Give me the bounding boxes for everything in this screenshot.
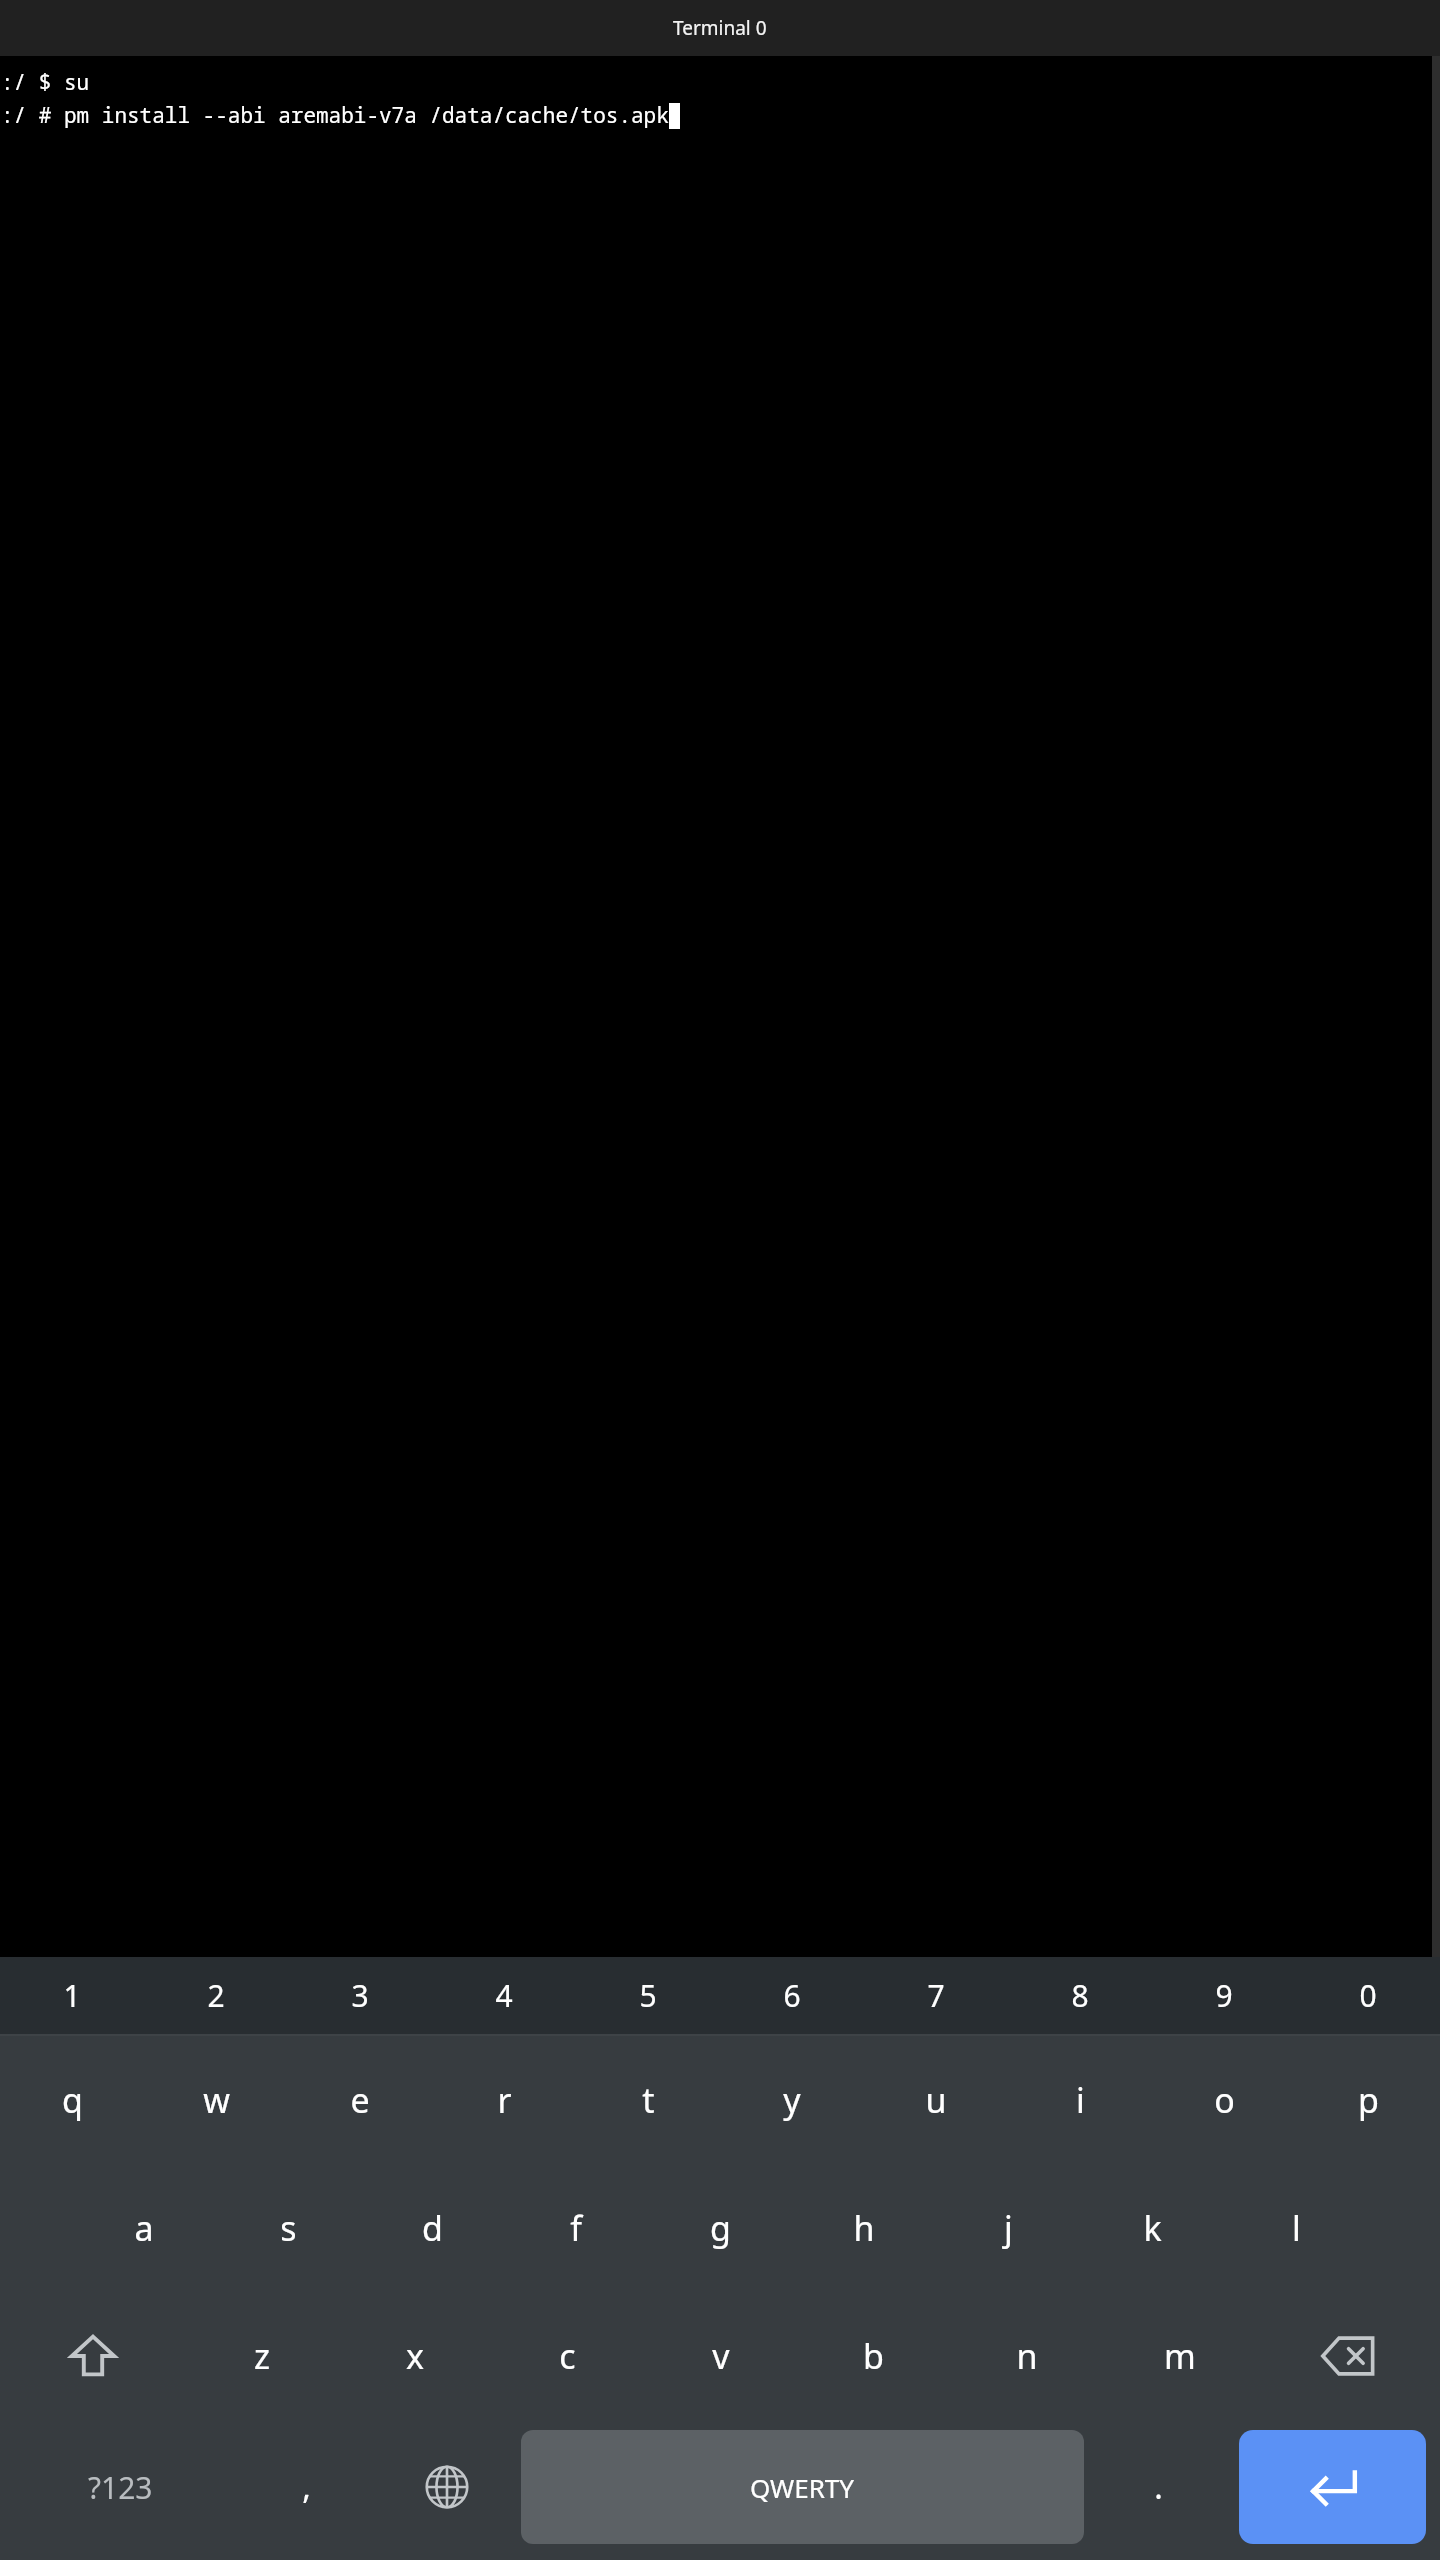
staticText: 3 (351, 1975, 369, 2016)
button[interactable]: 9 (1152, 1957, 1296, 2034)
staticText: h (853, 2205, 875, 2251)
button[interactable]: 8 (1008, 1957, 1152, 2034)
staticText: :/ # pm install --abi aremabi-v7a /data/… (1, 101, 669, 130)
staticText: 6 (783, 1975, 801, 2016)
staticText: 9 (1215, 1975, 1233, 2016)
staticText: z (254, 2333, 270, 2379)
button[interactable]: i (1008, 2036, 1152, 2164)
button[interactable]: x (338, 2292, 491, 2420)
staticText: d (422, 2205, 443, 2251)
button[interactable]: u (864, 2036, 1008, 2164)
staticText: . (1154, 2465, 1163, 2509)
button[interactable]: o (1152, 2036, 1296, 2164)
button[interactable]: l (1224, 2164, 1368, 2292)
staticText: m (1164, 2333, 1196, 2379)
button[interactable]: 2 (144, 1957, 288, 2034)
staticText: c (559, 2333, 576, 2379)
staticText: 4 (495, 1975, 513, 2016)
staticText: :/ $ su (1, 68, 90, 97)
staticText: v (712, 2333, 730, 2379)
button[interactable]: , (240, 2420, 372, 2554)
button[interactable]: e (288, 2036, 432, 2164)
staticText: u (925, 2077, 947, 2123)
staticText: 8 (1071, 1975, 1089, 2016)
button[interactable]: w (144, 2036, 288, 2164)
staticText: i (1076, 2077, 1085, 2123)
button[interactable]: t (576, 2036, 720, 2164)
staticText: 2 (207, 1975, 225, 2016)
button[interactable]: 3 (288, 1957, 432, 2034)
button[interactable]: r (432, 2036, 576, 2164)
staticText: t (642, 2077, 655, 2123)
staticText: j (1004, 2205, 1013, 2251)
button[interactable]: q (0, 2036, 144, 2164)
button[interactable]: ?123 (0, 2420, 240, 2554)
button[interactable]: f (504, 2164, 648, 2292)
button[interactable]: 6 (720, 1957, 864, 2034)
button[interactable]: h (792, 2164, 936, 2292)
button[interactable]: Backspace (1256, 2292, 1440, 2420)
staticText: 7 (927, 1975, 945, 2016)
button[interactable]: 4 (432, 1957, 576, 2034)
staticText: f (570, 2205, 582, 2251)
staticText: Terminal 0 (673, 15, 767, 41)
button[interactable]: m (1103, 2292, 1256, 2420)
staticText: w (203, 2077, 230, 2123)
button[interactable]: v (644, 2292, 797, 2420)
staticText: ?123 (88, 2467, 153, 2508)
button[interactable]: QWERTY (521, 2430, 1084, 2544)
staticText: b (863, 2333, 884, 2379)
staticText: QWERTY (750, 2470, 855, 2505)
button[interactable]: c (491, 2292, 644, 2420)
button[interactable]: Change language (372, 2420, 521, 2554)
staticText: n (1016, 2333, 1038, 2379)
button[interactable]: g (648, 2164, 792, 2292)
staticText: y (783, 2077, 801, 2123)
button[interactable]: 5 (576, 1957, 720, 2034)
button[interactable]: Shift (0, 2292, 185, 2420)
button[interactable]: k (1080, 2164, 1224, 2292)
staticText: l (1292, 2205, 1301, 2251)
staticText: r (497, 2077, 512, 2123)
staticText: s (280, 2205, 297, 2251)
staticText: , (302, 2465, 311, 2509)
button[interactable]: j (936, 2164, 1080, 2292)
staticText: 5 (639, 1975, 657, 2016)
button[interactable]: b (797, 2292, 950, 2420)
button[interactable]: z (185, 2292, 338, 2420)
staticText: k (1143, 2205, 1162, 2251)
staticText: 0 (1359, 1975, 1377, 2016)
staticText: p (1358, 2077, 1379, 2123)
staticText: g (710, 2205, 731, 2251)
staticText: x (406, 2333, 424, 2379)
staticText: q (62, 2077, 83, 2123)
button[interactable]: 1 (0, 1957, 144, 2034)
staticText: o (1214, 2077, 1235, 2123)
staticText: a (134, 2205, 154, 2251)
button[interactable]: d (360, 2164, 504, 2292)
button[interactable]: s (216, 2164, 360, 2292)
button[interactable]: . (1084, 2420, 1233, 2554)
button[interactable]: 7 (864, 1957, 1008, 2034)
button[interactable]: Enter (1239, 2430, 1426, 2544)
button[interactable]: a (72, 2164, 216, 2292)
button[interactable]: 0 (1296, 1957, 1440, 2034)
button[interactable]: y (720, 2036, 864, 2164)
staticText: 1 (63, 1975, 81, 2016)
button[interactable]: p (1296, 2036, 1440, 2164)
button[interactable]: n (950, 2292, 1103, 2420)
staticText: e (350, 2077, 370, 2123)
